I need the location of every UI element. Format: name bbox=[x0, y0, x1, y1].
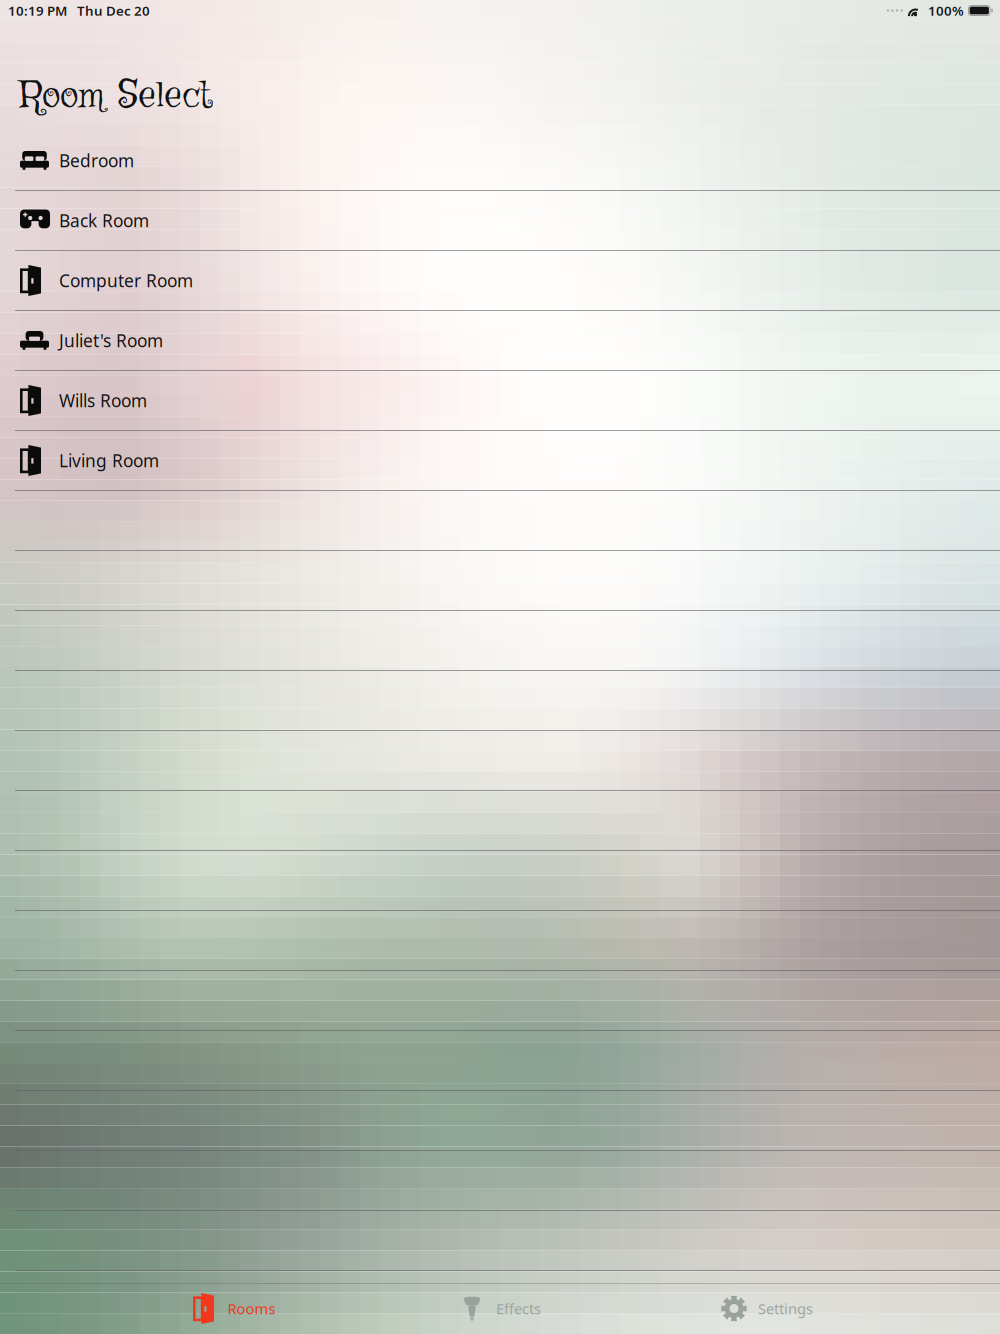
staticText: Computer Room bbox=[59, 269, 193, 292]
staticText: Juliet's Room bbox=[59, 329, 163, 352]
button[interactable]: Back Room bbox=[0, 191, 1000, 251]
staticText: 100% bbox=[928, 2, 964, 19]
button[interactable]: Living Room bbox=[0, 431, 1000, 491]
staticText: Thu Dec 20 bbox=[77, 2, 150, 19]
button[interactable]: Juliet's Room bbox=[0, 311, 1000, 371]
staticText: Rooms bbox=[227, 1299, 275, 1318]
staticText: Effects bbox=[496, 1299, 541, 1318]
staticText: 10:19 PM bbox=[8, 2, 67, 19]
button[interactable]: Computer Room bbox=[0, 251, 1000, 311]
staticText: Room Select bbox=[19, 70, 213, 122]
button[interactable]: Settings bbox=[633, 1283, 900, 1334]
staticText: Settings bbox=[758, 1299, 813, 1318]
button[interactable]: Bedroom bbox=[0, 131, 1000, 191]
staticText: Back Room bbox=[59, 209, 149, 232]
button[interactable]: Effects bbox=[366, 1283, 633, 1334]
staticText: Bedroom bbox=[59, 149, 134, 172]
staticText: Living Room bbox=[59, 449, 159, 472]
button[interactable]: Wills Room bbox=[0, 371, 1000, 431]
staticText: Wills Room bbox=[59, 389, 147, 412]
button[interactable]: Rooms bbox=[99, 1283, 366, 1334]
